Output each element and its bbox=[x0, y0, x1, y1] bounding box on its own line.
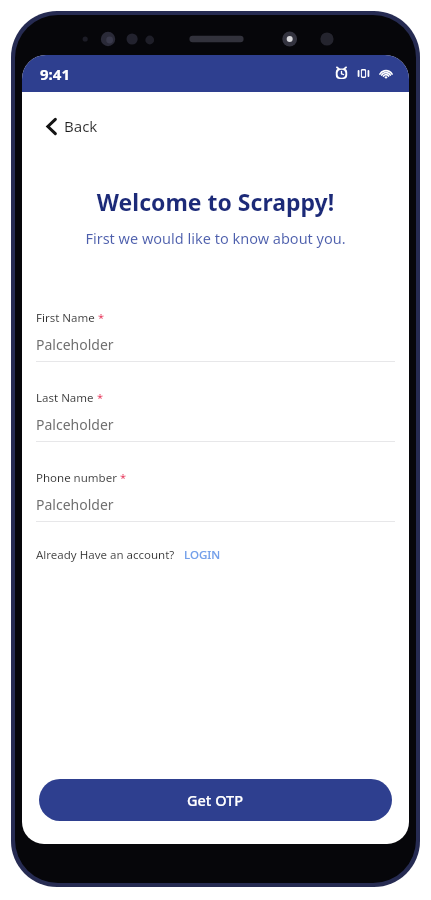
staticText: Palceholder bbox=[36, 495, 114, 514]
staticText: Get OTP bbox=[187, 790, 244, 810]
staticText: Welcome to Scrappy! bbox=[22, 186, 409, 217]
staticText: * bbox=[120, 470, 127, 485]
button[interactable]: Back bbox=[42, 110, 102, 142]
button[interactable]: Palceholder bbox=[36, 495, 395, 522]
staticText: Back bbox=[64, 116, 98, 136]
staticText: Palceholder bbox=[36, 415, 114, 434]
staticText: First Name bbox=[36, 310, 95, 326]
staticText: Already Have an account? bbox=[36, 547, 175, 563]
staticText: First we would like to know about you. bbox=[22, 228, 409, 248]
other: Wi-Fi bbox=[379, 68, 393, 80]
staticText: Phone number bbox=[36, 470, 117, 486]
staticText: Last Name bbox=[36, 390, 94, 406]
button[interactable]: Get OTP bbox=[39, 779, 392, 821]
other: Alarm bbox=[335, 67, 348, 80]
staticText: 9:41 bbox=[40, 64, 70, 84]
staticText: * bbox=[98, 310, 105, 325]
button[interactable]: LOGIN bbox=[182, 544, 223, 566]
staticText: LOGIN bbox=[184, 547, 221, 563]
button[interactable]: Palceholder bbox=[36, 415, 395, 442]
staticText: * bbox=[97, 390, 104, 405]
button[interactable]: Palceholder bbox=[36, 335, 395, 362]
staticText: Palceholder bbox=[36, 335, 114, 354]
other: Vibrate bbox=[357, 67, 370, 80]
